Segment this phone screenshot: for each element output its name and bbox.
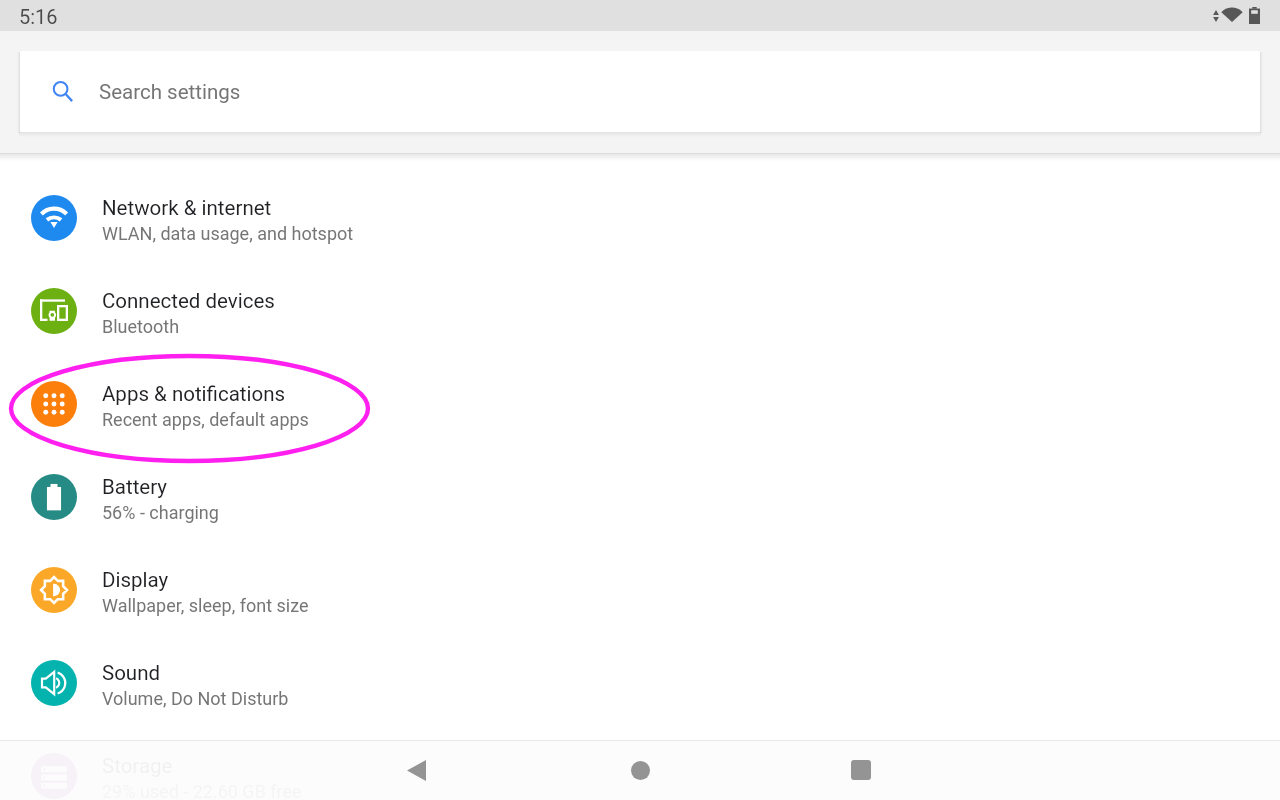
staticText: Bluetooth xyxy=(102,316,180,337)
button[interactable]: Battery xyxy=(0,450,1280,543)
staticText: Volume, Do Not Disturb xyxy=(102,688,289,709)
staticText: Wallpaper, sleep, font size xyxy=(102,595,309,616)
staticText: 5:16 xyxy=(19,5,58,28)
staticText: Recent apps, default apps xyxy=(102,409,309,430)
staticText: Storage xyxy=(102,754,173,778)
staticText: Apps & notifications xyxy=(102,382,286,406)
button[interactable]: Network & internet xyxy=(0,171,1280,264)
staticText: WLAN, data usage, and hotspot xyxy=(102,223,354,244)
staticText: Display xyxy=(102,568,169,592)
button[interactable]: Apps & notifications xyxy=(0,357,1280,450)
staticText: 56% - charging xyxy=(102,502,219,523)
staticText: Battery xyxy=(102,475,168,499)
staticText: Network & internet xyxy=(102,196,272,220)
staticText: Connected devices xyxy=(102,289,275,313)
button[interactable]: Recent apps xyxy=(837,740,885,800)
button[interactable]: Back xyxy=(392,740,440,800)
button[interactable]: Storage xyxy=(0,729,1280,800)
staticText: Sound xyxy=(102,661,161,685)
button[interactable]: Home xyxy=(616,740,664,800)
button[interactable]: Connected devices xyxy=(0,264,1280,357)
staticText: Search settings xyxy=(99,80,241,104)
button[interactable]: Sound xyxy=(0,636,1280,729)
button[interactable]: Search settings xyxy=(20,51,1260,132)
button[interactable]: Display xyxy=(0,543,1280,636)
